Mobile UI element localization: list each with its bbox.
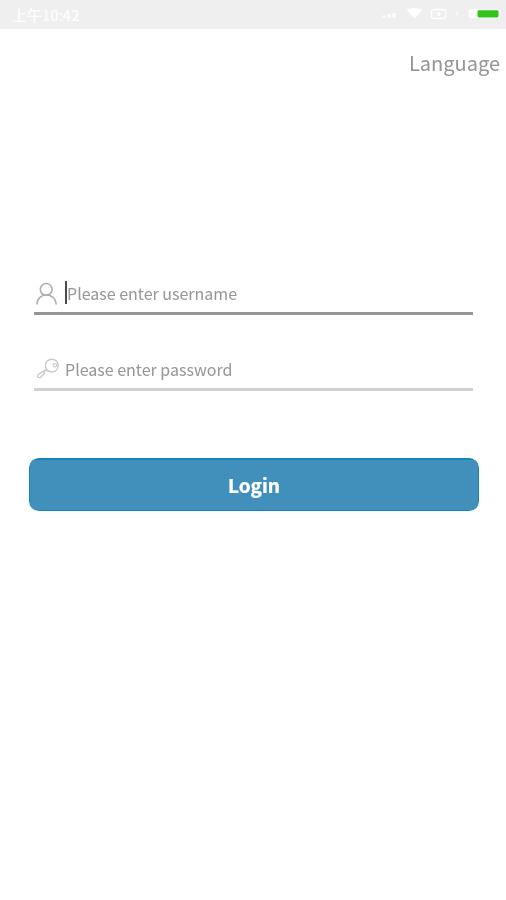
button[interactable]: Password: [0, 350, 506, 392]
staticText: Login: [228, 471, 280, 499]
button[interactable]: Language: [397, 38, 506, 87]
other: Username: [36, 280, 57, 305]
staticText: 上午10:42: [12, 4, 80, 26]
other: Password: [36, 356, 57, 381]
staticText: Language: [409, 48, 501, 77]
button[interactable]: Login: [30, 460, 478, 510]
staticText: Please enter password: [65, 357, 233, 380]
staticText: Please enter username: [67, 281, 238, 304]
button[interactable]: Username: [0, 274, 506, 316]
